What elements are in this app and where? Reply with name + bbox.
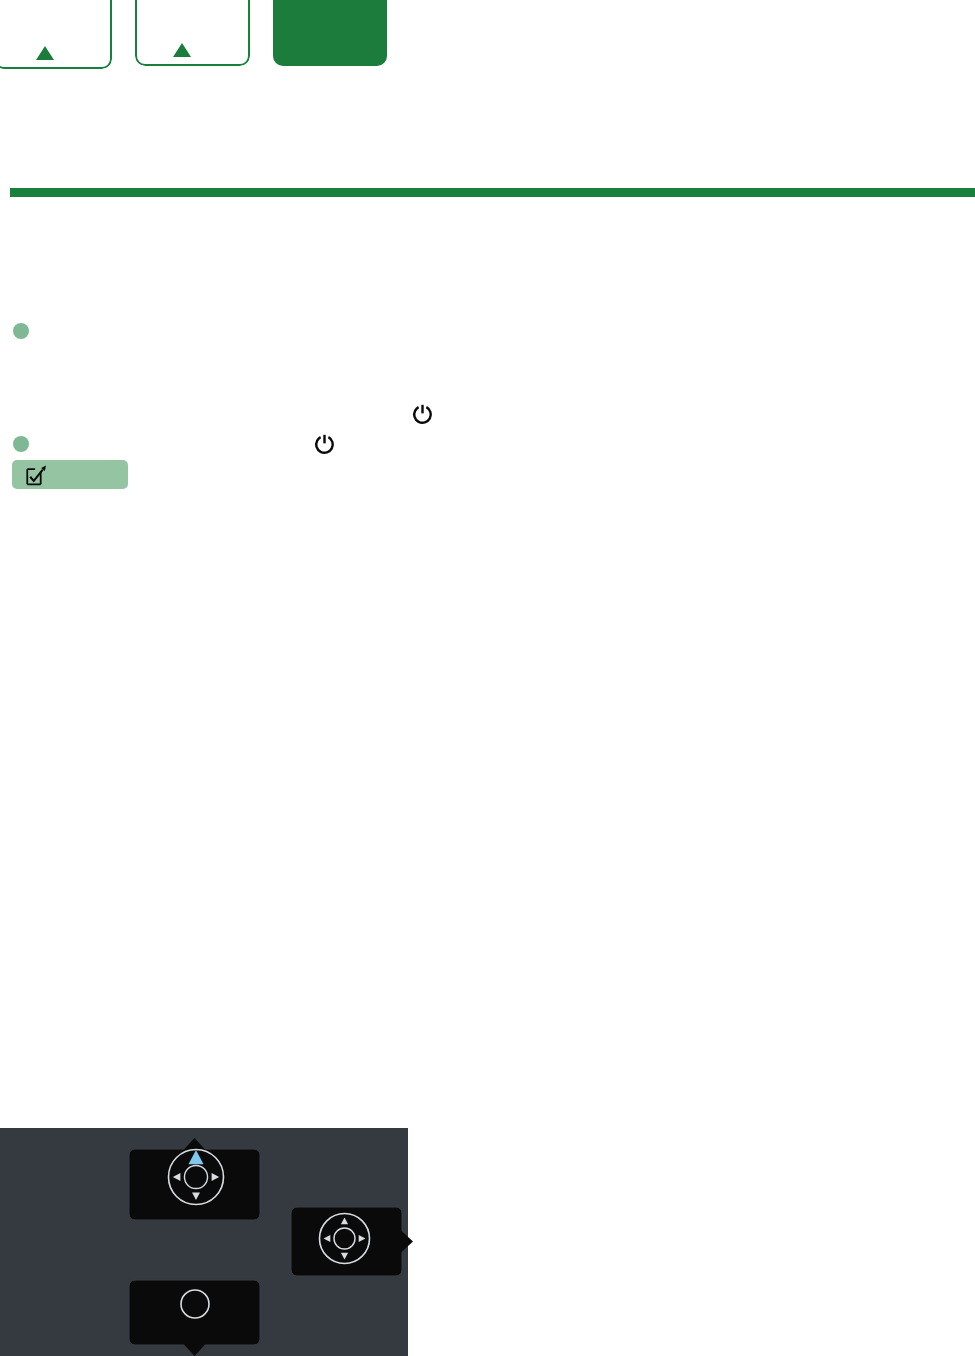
button[interactable]: Directional pad <box>318 1212 371 1265</box>
button[interactable]: Select button <box>180 1289 210 1319</box>
other: Expand card one <box>36 46 54 60</box>
button[interactable] <box>273 0 387 66</box>
button[interactable] <box>135 0 250 66</box>
button[interactable]: Power <box>411 403 434 426</box>
button[interactable]: Power toggle <box>313 433 336 456</box>
button[interactable] <box>0 0 112 69</box>
button[interactable]: Directional pad up <box>167 1148 225 1206</box>
button[interactable]: Edit checkbox <box>12 460 128 489</box>
other: Edit checkbox <box>26 465 47 486</box>
other: Expand card two <box>173 43 191 57</box>
